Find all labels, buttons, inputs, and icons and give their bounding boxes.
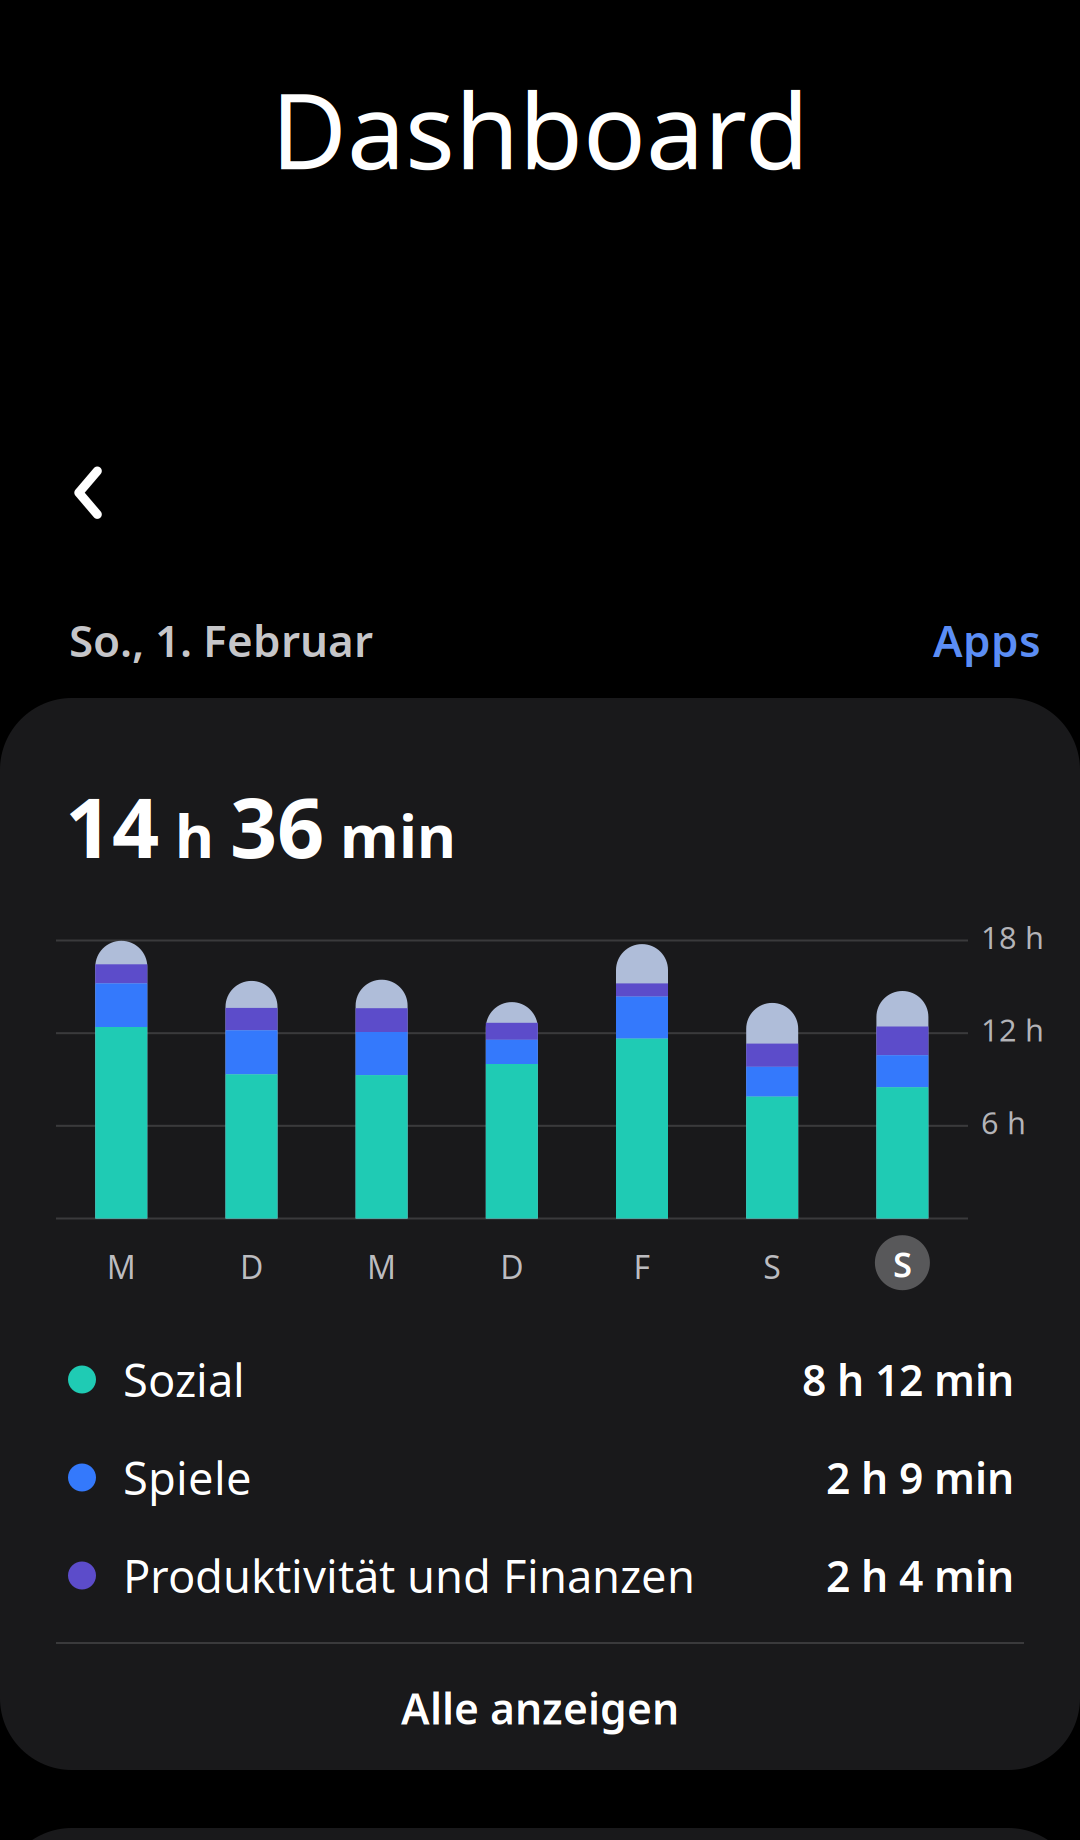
staticText: min (324, 795, 456, 875)
button[interactable]: Donnerstag (480, 1234, 544, 1298)
button[interactable]: Samstag (740, 1234, 804, 1298)
button[interactable]: Montag (89, 1234, 153, 1298)
staticText: 6 h (981, 1102, 1026, 1143)
staticText: Produktivität und Finanzen (123, 1545, 695, 1606)
staticText: D (500, 1245, 523, 1288)
staticText: h (159, 795, 230, 875)
button[interactable]: Alle anzeigen (0, 1645, 1080, 1771)
button[interactable]: Mittwoch (350, 1234, 414, 1298)
button[interactable]: Freitag (610, 1234, 674, 1298)
staticText: Dashboard (271, 60, 809, 198)
staticText: M (107, 1245, 136, 1288)
button[interactable]: Dienstag (219, 1234, 283, 1298)
staticText: 2 h 9 min (826, 1449, 1014, 1506)
staticText: 18 h (981, 917, 1044, 957)
staticText: Sozial (123, 1349, 245, 1410)
staticText: 2 h 4 min (826, 1547, 1014, 1604)
staticText: Spiele (123, 1447, 252, 1508)
staticText: 14 (65, 771, 159, 881)
staticText: 12 h (981, 1009, 1044, 1050)
staticText: S (763, 1245, 781, 1288)
staticText: Apps (933, 611, 1041, 669)
staticText: S (893, 1241, 912, 1287)
button[interactable]: Zurück (45, 437, 131, 548)
staticText: So., 1. Februar (69, 611, 373, 669)
staticText: D (240, 1245, 263, 1288)
staticText: F (633, 1245, 650, 1288)
staticText: M (367, 1245, 396, 1288)
button[interactable]: Apps (919, 599, 1055, 681)
staticText: 36 (230, 771, 324, 881)
staticText: 8 h 12 min (802, 1351, 1014, 1408)
button[interactable]: Sonntag (870, 1232, 934, 1296)
staticText: Alle anzeigen (401, 1680, 679, 1736)
